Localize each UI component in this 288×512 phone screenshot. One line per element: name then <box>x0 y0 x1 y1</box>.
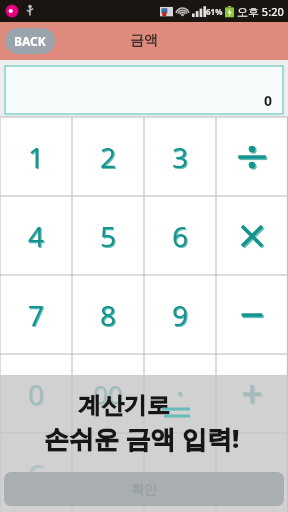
button[interactable] <box>144 433 216 512</box>
staticText: BACK <box>14 33 46 49</box>
button[interactable]: 9 <box>144 275 216 354</box>
button[interactable]: 0 <box>5 66 283 114</box>
button[interactable]: C <box>0 433 72 512</box>
button[interactable]: · <box>144 354 216 433</box>
staticText: 9 <box>172 296 189 334</box>
staticText: 금액 <box>130 32 158 50</box>
staticText: 00 <box>94 377 124 412</box>
other: Plus <box>237 379 267 409</box>
staticText: 4 <box>29 218 46 256</box>
button[interactable]: 00 <box>72 354 144 433</box>
staticText: 6 <box>173 218 190 256</box>
staticText: 0 <box>264 91 273 110</box>
button[interactable]: 7 <box>0 275 72 354</box>
staticText: 5 <box>101 218 118 256</box>
staticText: 2 <box>100 138 117 176</box>
button[interactable]: Minus <box>216 275 288 354</box>
staticText: 7 <box>28 296 45 334</box>
staticText: 9 <box>173 297 190 335</box>
button[interactable] <box>216 433 288 512</box>
staticText: 손쉬운 금액 입력! <box>44 421 240 455</box>
staticText: 8 <box>101 297 118 335</box>
button[interactable]: BACK <box>5 28 55 54</box>
other: Multiply <box>237 221 267 251</box>
button[interactable]: 3 <box>144 117 216 196</box>
staticText: 8 <box>100 296 117 334</box>
staticText: 1 <box>29 139 46 177</box>
staticText: 6 <box>172 217 189 255</box>
button[interactable]: Divide <box>216 117 288 196</box>
button[interactable]: Multiply <box>216 196 288 275</box>
staticText: 3 <box>172 138 189 176</box>
button[interactable]: 0 <box>0 354 72 433</box>
button[interactable] <box>72 433 144 512</box>
staticText: 0 <box>29 376 46 414</box>
staticText: C <box>29 456 46 491</box>
other: Divide <box>237 142 267 172</box>
staticText: · <box>177 374 186 415</box>
staticText: 5 <box>100 217 117 255</box>
staticText: 00 <box>93 376 123 411</box>
staticText: 오후 5:20 <box>237 4 284 19</box>
staticText: 계산기로 <box>78 391 170 420</box>
button[interactable]: 6 <box>144 196 216 275</box>
button[interactable]: 5 <box>72 196 144 275</box>
staticText: 2 <box>101 139 118 177</box>
staticText: 3 <box>173 139 190 177</box>
staticText: 1 <box>28 138 45 176</box>
staticText: 확인 <box>131 481 157 497</box>
other: Minus <box>237 300 267 330</box>
button[interactable]: 2 <box>72 117 144 196</box>
button[interactable]: 4 <box>0 196 72 275</box>
staticText: · <box>176 373 185 414</box>
button[interactable]: 확인 <box>4 472 284 506</box>
button[interactable]: Plus <box>216 354 288 433</box>
staticText: 4 <box>28 217 45 255</box>
button[interactable]: 8 <box>72 275 144 354</box>
button[interactable]: 1 <box>0 117 72 196</box>
staticText: C <box>28 455 45 490</box>
staticText: 61% <box>206 6 223 17</box>
staticText: 0 <box>28 375 45 413</box>
staticText: 7 <box>29 297 46 335</box>
